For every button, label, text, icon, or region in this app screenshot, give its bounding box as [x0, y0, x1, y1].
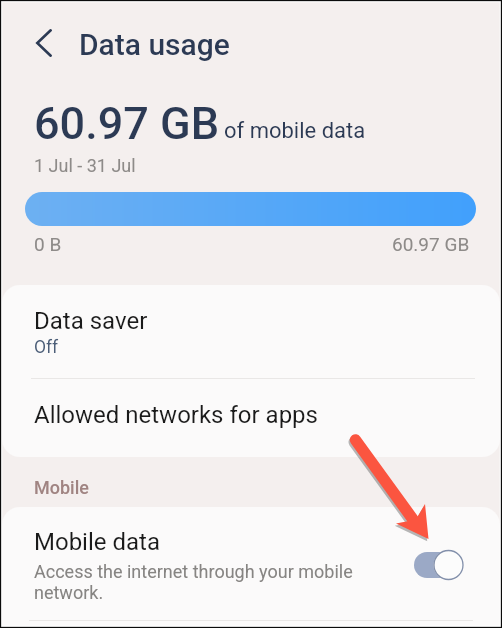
staticText: 1 Jul - 31 Jul [34, 155, 136, 176]
button[interactable]: Mobile data [2, 507, 500, 628]
staticText: 60.97 GB [392, 233, 470, 255]
button[interactable]: Data saver [2, 285, 500, 378]
staticText: Off [34, 337, 59, 358]
staticText: Access the internet through your mobile … [34, 561, 400, 603]
staticText: Data saver [34, 307, 148, 335]
button[interactable]: Back [26, 25, 62, 61]
button[interactable]: Mobile data toggle [414, 548, 464, 582]
staticText: 60.97 GB [34, 97, 220, 150]
staticText: of mobile data [224, 118, 366, 144]
staticText: 0 B [34, 233, 62, 255]
staticText: Mobile [34, 477, 89, 498]
staticText: Mobile data [34, 528, 160, 556]
staticText: Allowed networks for apps [34, 401, 318, 429]
button[interactable]: Allowed networks for apps [2, 379, 500, 457]
staticText: Data usage [79, 27, 230, 62]
